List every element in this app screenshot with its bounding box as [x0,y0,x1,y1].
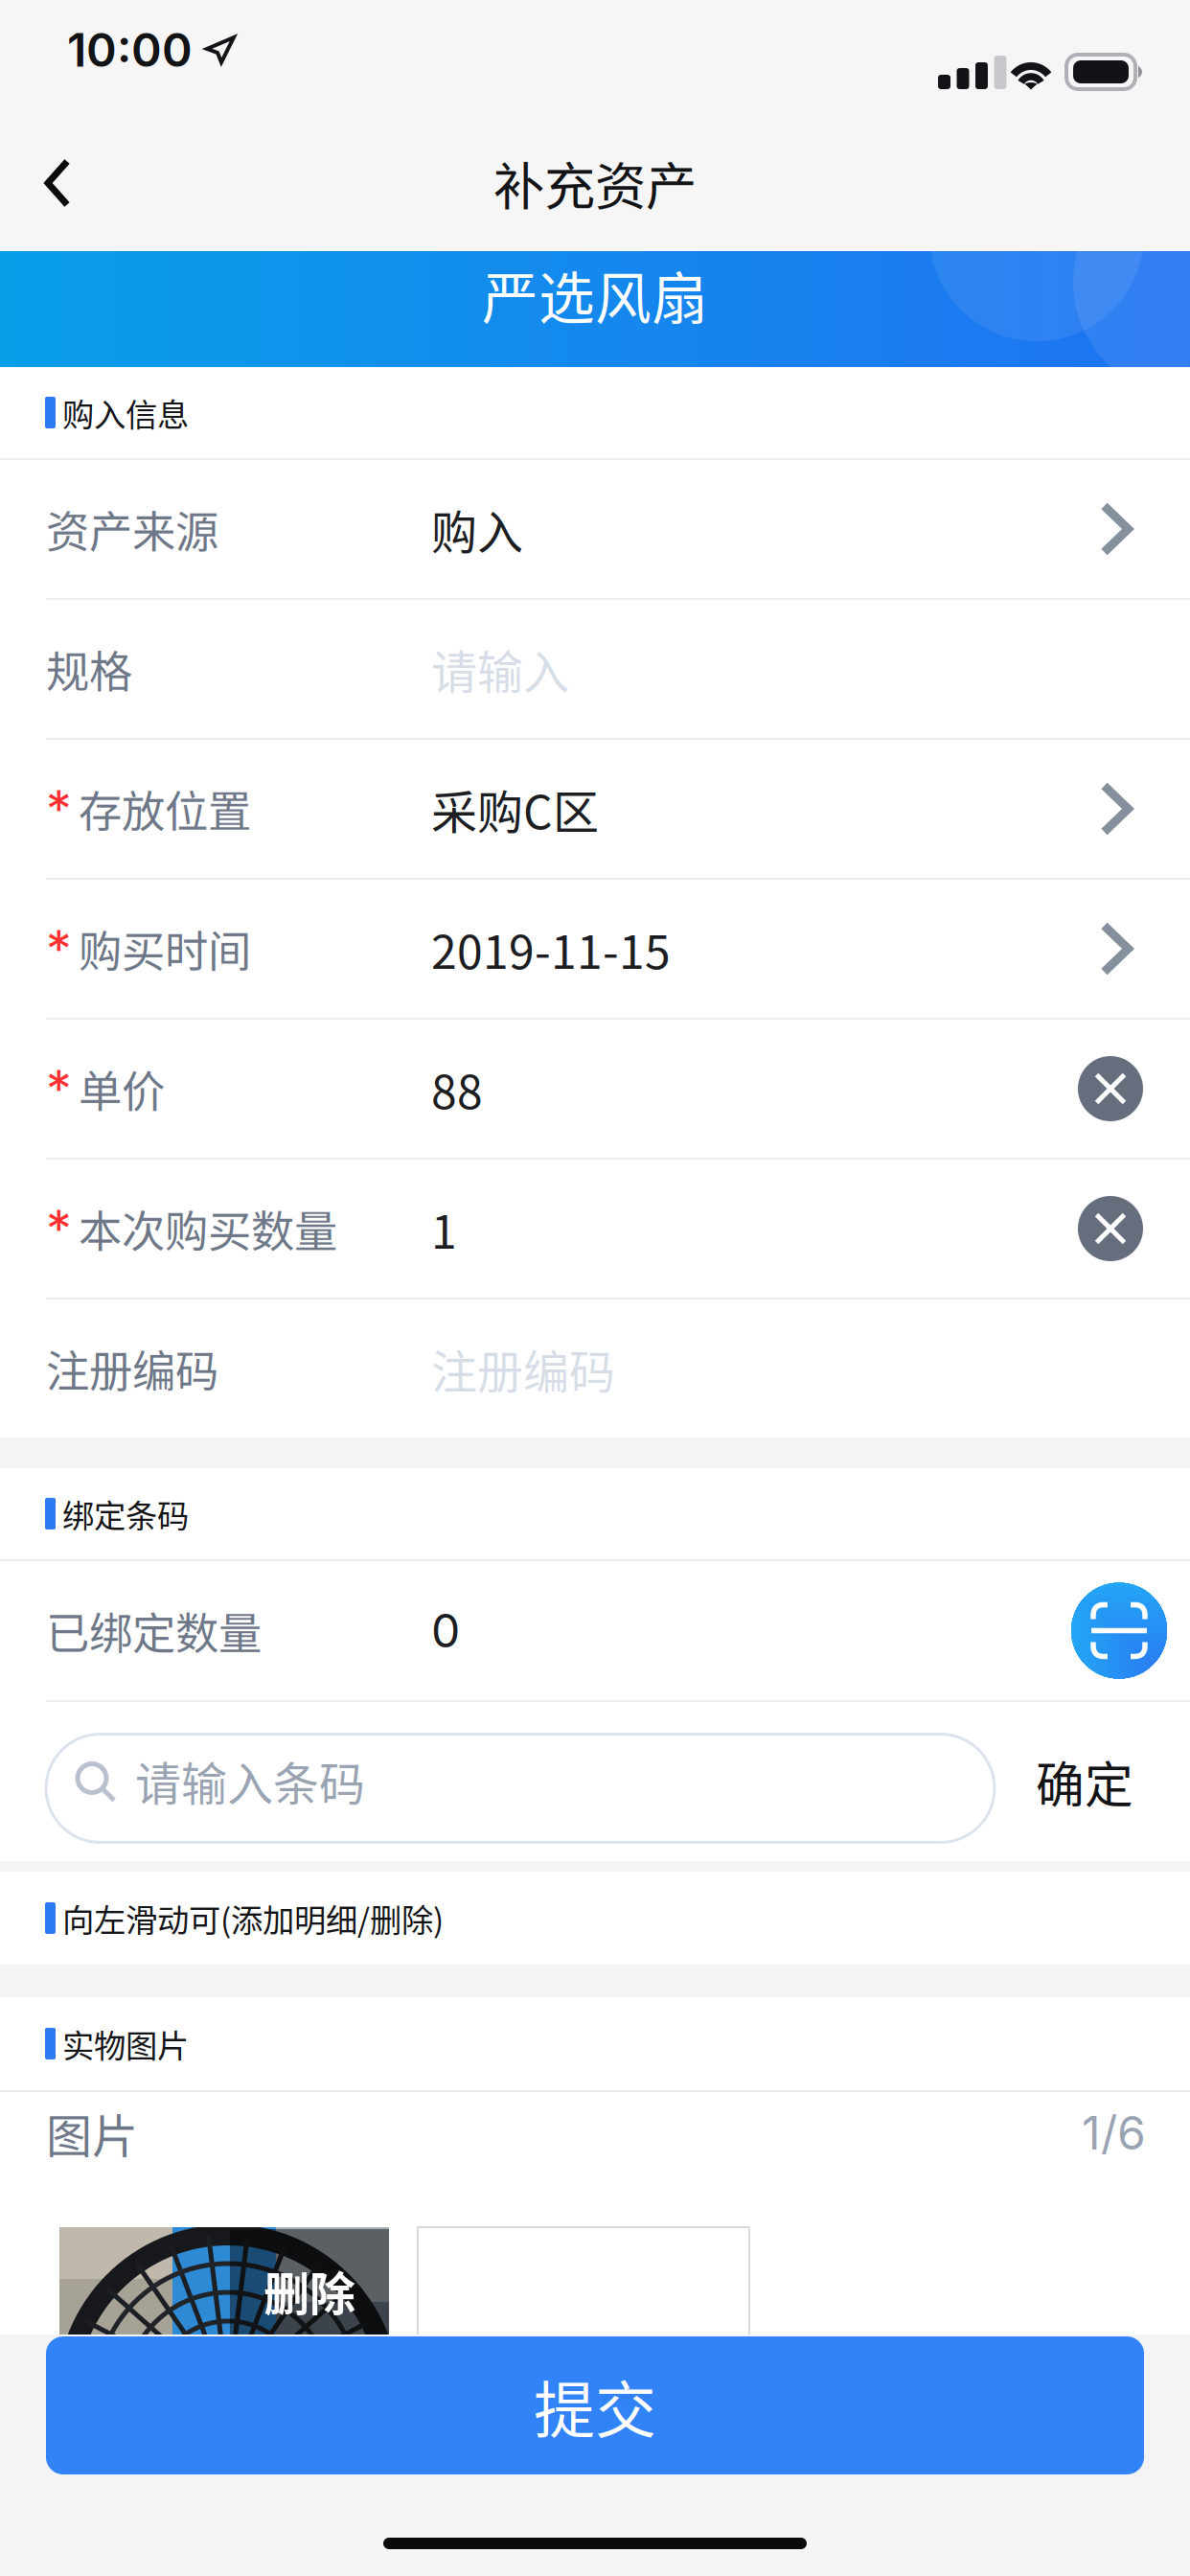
button[interactable]: Add photo [418,2227,749,2449]
staticText: 1 [431,1195,457,1262]
button[interactable]: Photo 1 [59,2227,389,2449]
staticText: 采购C区 [431,775,599,842]
staticText: 请输入条码 [135,1747,365,1814]
staticText: 实物图片 [62,2021,189,2067]
staticText: 88 [431,1055,483,1122]
staticText: * [46,778,72,840]
staticText: 0 [431,1603,460,1658]
staticText: 向左滑动可(添加明细/删除) [62,1895,444,1941]
staticText: 已绑定数量 [46,1599,262,1662]
staticText: 注册编码 [46,1337,218,1400]
staticText: 删除 [263,2257,355,2324]
staticText: 1/6 [1082,2105,1146,2161]
staticText: 绑定条码 [62,1491,189,1537]
staticText: 补充资产 [493,146,697,220]
button[interactable]: Back [0,126,115,241]
staticText: * [46,918,72,980]
staticText: 图片 [46,2099,138,2166]
button[interactable]: * [0,1020,1190,1158]
staticText: 规格 [46,637,132,700]
button[interactable]: 注册编码 [0,1299,1190,1437]
button[interactable]: Scan barcode [1071,1583,1167,1679]
staticText: 购入信息 [62,389,189,436]
staticText: 10:00 [67,22,193,78]
staticText: 购入 [431,496,523,562]
staticText: 本次购买数量 [79,1197,337,1260]
button[interactable]: * [0,1160,1190,1298]
staticText: 2019-11-15 [431,915,671,982]
staticText: 资产来源 [46,498,218,560]
button[interactable]: * [0,880,1190,1018]
staticText: 提交 [534,2361,656,2450]
staticText: 请输入 [431,636,569,702]
staticText: 确定 [1036,1746,1133,1817]
button[interactable]: 资产来源 [0,460,1190,598]
button[interactable]: 确定 [1018,1727,1152,1836]
button[interactable]: 规格 [0,600,1190,738]
staticText: 严选风扇 [482,254,708,335]
button[interactable]: * [0,740,1190,878]
staticText: * [46,1198,72,1259]
staticText: 单价 [79,1057,165,1120]
staticText: 注册编码 [431,1335,615,1402]
button[interactable]: 提交 [0,2336,1190,2474]
staticText: * [46,1058,72,1120]
staticText: 购买时间 [79,917,251,980]
staticText: 存放位置 [79,777,251,840]
